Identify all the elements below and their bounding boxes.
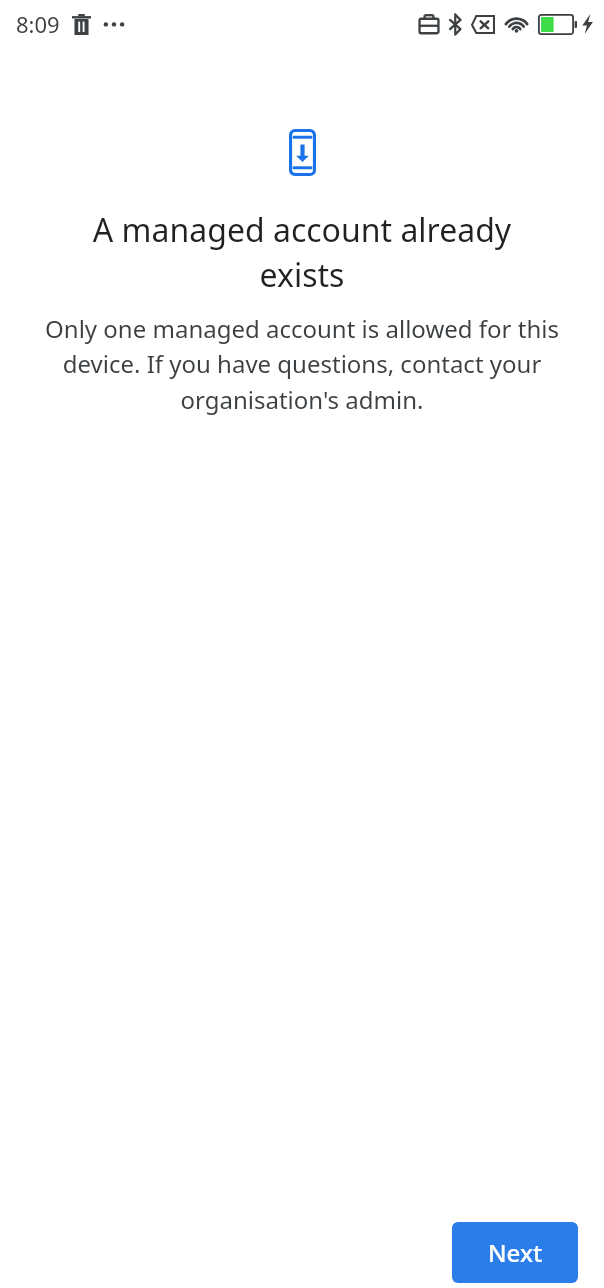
staticText: A managed account already exists [50,208,554,296]
staticText: 8:09 [16,9,60,39]
button[interactable]: Next [452,1222,578,1283]
staticText: Only one managed account is allowed for … [40,312,564,416]
staticText: Next [488,1236,543,1269]
